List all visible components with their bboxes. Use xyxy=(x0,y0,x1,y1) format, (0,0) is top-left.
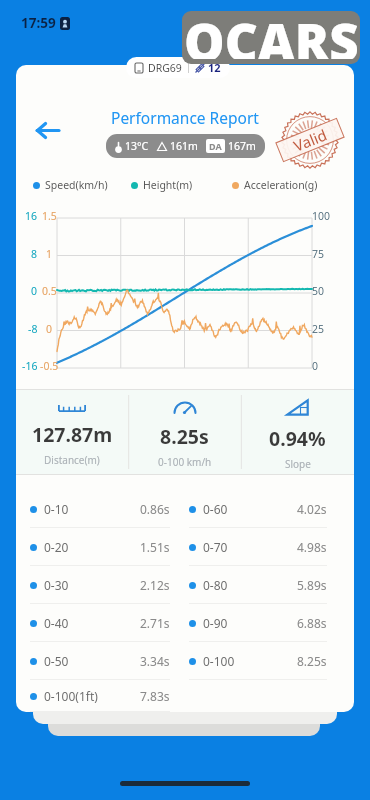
staticText: 16 xyxy=(25,209,38,223)
button[interactable]: 0-80 xyxy=(185,566,354,604)
staticText: 1.5 xyxy=(42,209,57,223)
staticText: DA xyxy=(209,140,222,152)
staticText: 17:59 xyxy=(21,14,56,32)
button[interactable]: 0-100(1ft) xyxy=(16,680,185,712)
button[interactable]: 127.87m xyxy=(16,389,128,475)
staticText: 127.87m xyxy=(32,421,113,448)
button[interactable]: 0-70 xyxy=(185,528,354,566)
staticText: 0 xyxy=(312,359,319,373)
staticText: 167m xyxy=(228,139,256,153)
button[interactable]: 0-40 xyxy=(16,604,185,642)
staticText: 3.34s xyxy=(140,653,170,669)
staticText: 0 xyxy=(31,284,38,298)
staticText: 0-90 xyxy=(203,615,228,631)
button[interactable]: 0-60 xyxy=(185,490,354,528)
button[interactable]: 8.25s xyxy=(128,389,241,475)
button[interactable]: 0-100 xyxy=(185,642,354,680)
staticText: 8.25s xyxy=(160,423,209,450)
button[interactable]: 0-50 xyxy=(16,642,185,680)
staticText: -0.5 xyxy=(40,359,59,373)
staticText: 2.12s xyxy=(140,577,170,593)
staticText: 0 xyxy=(46,322,53,336)
staticText: Performance Report xyxy=(111,107,259,128)
staticText: 0-60 xyxy=(203,501,228,517)
staticText: 4.02s xyxy=(297,501,327,517)
staticText: 50 xyxy=(312,284,325,298)
staticText: 6.88s xyxy=(297,615,327,631)
staticText: Valid xyxy=(290,124,330,156)
button[interactable]: 0.94% xyxy=(241,389,354,475)
staticText: 7.83s xyxy=(140,688,170,704)
staticText: Slope xyxy=(285,457,311,471)
button[interactable]: Back xyxy=(27,110,67,150)
button[interactable]: 0-90 xyxy=(185,604,354,642)
staticText: Height(m) xyxy=(143,178,193,192)
button[interactable]: 0-10 xyxy=(16,490,185,528)
staticText: Speed(km/h) xyxy=(45,178,108,192)
staticText: 0-100 km/h xyxy=(158,455,212,469)
staticText: 0.86s xyxy=(140,501,170,517)
staticText: OCARS xyxy=(184,6,359,59)
staticText: 13°C xyxy=(125,139,149,153)
staticText: Distance(m) xyxy=(44,453,100,467)
staticText: 1 xyxy=(46,247,53,261)
staticText: 100 xyxy=(312,209,331,223)
staticText: 0.5 xyxy=(42,284,57,298)
staticText: 2.71s xyxy=(140,615,170,631)
staticText: 161m xyxy=(170,139,198,153)
staticText: 0-80 xyxy=(203,577,228,593)
staticText: 0-100 xyxy=(203,653,235,669)
staticText: 8.25s xyxy=(297,653,327,669)
staticText: 0-30 xyxy=(44,577,69,593)
staticText: 0-70 xyxy=(203,539,228,555)
staticText: 25 xyxy=(312,322,325,336)
button[interactable]: 0-20 xyxy=(16,528,185,566)
staticText: 8 xyxy=(31,247,38,261)
button[interactable]: 0-30 xyxy=(16,566,185,604)
staticText: DRG69 xyxy=(148,61,182,75)
staticText: 0-50 xyxy=(44,653,69,669)
staticText: 75 xyxy=(312,247,325,261)
staticText: -16 xyxy=(22,359,38,373)
staticText: 1.51s xyxy=(140,539,170,555)
staticText: Acceleration(g) xyxy=(244,178,318,192)
staticText: 4.98s xyxy=(297,539,327,555)
staticText: 12 xyxy=(208,60,221,75)
staticText: 5.89s xyxy=(297,577,327,593)
button[interactable]: DRG69 xyxy=(126,57,230,78)
staticText: 0-20 xyxy=(44,539,69,555)
staticText: 0-40 xyxy=(44,615,69,631)
staticText: 0.94% xyxy=(269,425,326,452)
staticText: 0-100(1ft) xyxy=(44,688,98,704)
staticText: -8 xyxy=(28,322,38,336)
staticText: 0-10 xyxy=(44,501,69,517)
